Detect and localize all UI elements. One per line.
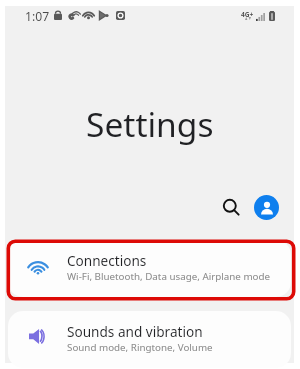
button[interactable]: Account xyxy=(254,195,279,220)
staticText: Wi-Fi, Bluetooth, Data usage, Airplane m… xyxy=(67,270,271,283)
staticText: Settings xyxy=(86,101,214,147)
staticText: 4G+ xyxy=(241,10,254,19)
staticText: Sounds and vibration xyxy=(67,322,203,341)
button[interactable]: Search xyxy=(214,190,248,224)
staticText: 1:07 xyxy=(25,8,50,25)
button[interactable]: Sounds and vibration xyxy=(8,311,291,368)
staticText: Sound mode, Ringtone, Volume xyxy=(67,341,213,354)
staticText: Connections xyxy=(67,251,147,270)
button[interactable]: Connections xyxy=(8,240,291,297)
